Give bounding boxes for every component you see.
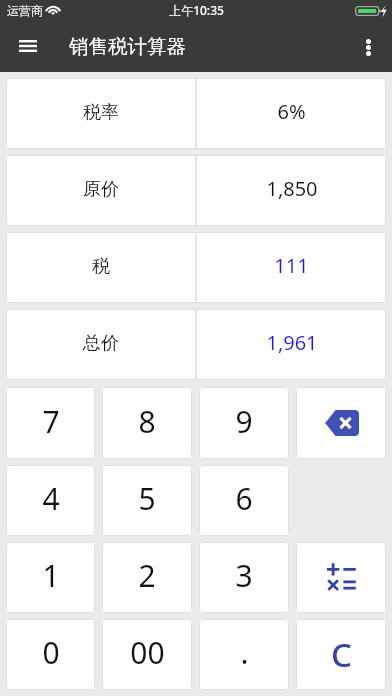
staticText: 运营商 [7,3,43,18]
staticText: 销售税计算器 [69,34,186,59]
staticText: 税率 [83,101,119,124]
staticText: 111 [274,252,309,279]
button[interactable]: 税 [6,232,386,303]
staticText: 5 [138,478,156,519]
button[interactable]: 总价 [6,309,386,380]
button[interactable]: 4 [6,465,95,536]
button[interactable]: 6 [199,465,289,536]
staticText: 7 [42,401,60,442]
staticText: 4 [42,478,60,519]
staticText: 3 [235,555,253,596]
button[interactable]: 2 [102,542,192,613]
button[interactable]: Backspace [296,387,386,459]
button[interactable]: C [296,619,386,690]
button[interactable]: More options [344,23,392,71]
button[interactable]: 0 [6,619,95,690]
button[interactable]: 1 [6,542,95,613]
staticText: 9 [235,401,253,442]
staticText: 上午10:35 [169,2,224,18]
button[interactable]: Operations [296,542,386,613]
staticText: 00 [130,632,165,673]
button[interactable]: 00 [102,619,192,690]
staticText: 1 [42,555,60,596]
staticText: . [240,632,249,673]
staticText: 1,961 [266,329,318,356]
staticText: 2 [138,555,156,596]
staticText: 税 [92,255,110,278]
staticText: 0 [42,632,60,673]
staticText: 6% [277,98,306,125]
staticText: 总价 [83,332,119,355]
button[interactable]: 原价 [6,155,386,226]
staticText: 1,850 [266,175,318,202]
button[interactable]: 税率 [6,78,386,149]
button[interactable]: 3 [199,542,289,613]
staticText: 原价 [83,178,119,201]
button[interactable]: 8 [102,387,192,459]
button[interactable]: . [199,619,289,690]
button[interactable]: 9 [199,387,289,459]
staticText: 8 [138,401,156,442]
button[interactable]: 7 [6,387,95,459]
button[interactable]: Navigation menu [0,22,54,72]
button[interactable]: 5 [102,465,192,536]
staticText: 6 [235,478,253,519]
staticText: C [331,632,352,677]
